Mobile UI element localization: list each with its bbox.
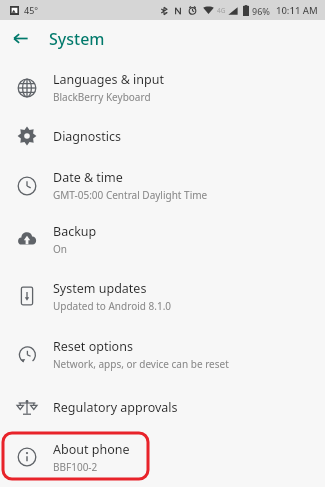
staticText: About phone <box>53 441 130 458</box>
button[interactable]: Date & time <box>0 160 325 211</box>
staticText: Date & time <box>53 169 123 186</box>
staticText: Diagnostics <box>53 128 122 145</box>
staticText: System updates <box>53 280 147 297</box>
staticText: Regulatory approvals <box>53 399 178 416</box>
button[interactable]: Reset options <box>0 325 325 383</box>
staticText: 10:11 AM <box>276 4 318 17</box>
button[interactable]: About phone <box>0 431 325 483</box>
staticText: Network, apps, or device can be reset <box>53 357 229 371</box>
staticText: On <box>53 242 67 256</box>
staticText: BlackBerry Keyboard <box>53 90 151 104</box>
button[interactable]: Diagnostics <box>0 112 325 160</box>
button[interactable]: Languages & input <box>0 63 325 112</box>
staticText: Reset options <box>53 338 133 355</box>
staticText: GMT-05:00 Central Daylight Time <box>53 188 208 202</box>
staticText: Languages & input <box>53 71 164 88</box>
staticText: Backup <box>53 223 97 240</box>
staticText: 45° <box>24 4 39 16</box>
staticText: System <box>49 28 105 50</box>
button[interactable]: Back <box>0 20 40 57</box>
button[interactable]: Regulatory approvals <box>0 383 325 431</box>
staticText: Updated to Android 8.1.0 <box>53 299 172 313</box>
button[interactable]: Backup <box>0 211 325 267</box>
staticText: BBF100-2 <box>53 460 98 474</box>
staticText: 96% <box>252 5 270 17</box>
staticText: 4G <box>217 6 226 15</box>
button[interactable]: System updates <box>0 267 325 325</box>
